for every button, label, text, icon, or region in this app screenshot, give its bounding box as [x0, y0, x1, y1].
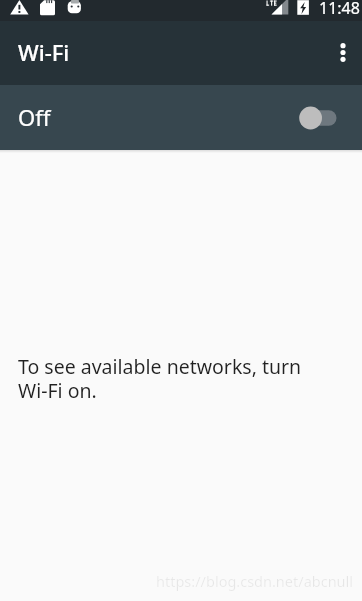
button[interactable]: Off — [0, 85, 362, 150]
staticText: 11:48 — [319, 0, 360, 18]
button[interactable]: More options — [323, 29, 362, 77]
staticText: Off — [18, 102, 51, 132]
staticText: https://blog.csdn.net/abcnull — [156, 571, 354, 591]
staticText: Wi-Fi — [18, 37, 70, 67]
staticText: To see available networks, turn Wi-Fi on… — [18, 353, 302, 404]
